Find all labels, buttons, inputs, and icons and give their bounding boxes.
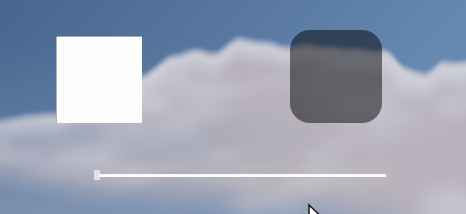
button[interactable]: Opacity slider	[94, 165, 394, 185]
button[interactable]: Opaque material sample	[56, 36, 142, 123]
button[interactable]: Translucent material sample	[290, 30, 382, 123]
